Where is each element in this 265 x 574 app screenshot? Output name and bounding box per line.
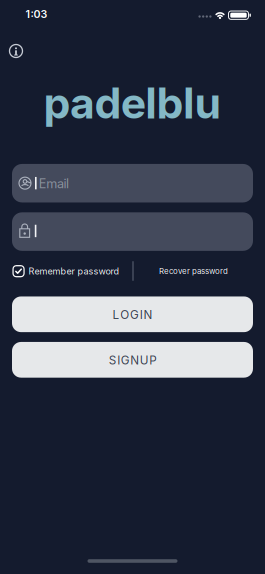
- staticText: O: [120, 308, 129, 322]
- button[interactable]: Recover password: [159, 266, 228, 276]
- staticText: G: [130, 308, 139, 322]
- button[interactable]: Remember password: [13, 266, 119, 277]
- staticText: L: [112, 308, 119, 322]
- staticText: N: [144, 308, 153, 322]
- button[interactable]: Password: [12, 212, 253, 251]
- staticText: I: [140, 308, 143, 322]
- staticText: S: [109, 353, 117, 367]
- staticText: 1:03: [25, 7, 47, 20]
- staticText: padelblu: [44, 77, 221, 129]
- staticText: Recover password: [159, 266, 228, 276]
- staticText: U: [140, 353, 149, 367]
- button[interactable]: Email: [12, 164, 253, 202]
- button[interactable]: L: [12, 296, 253, 332]
- staticText: I: [117, 353, 120, 367]
- button[interactable]: Info: [7, 42, 24, 59]
- staticText: Remember password: [28, 266, 119, 277]
- staticText: N: [130, 353, 139, 367]
- staticText: P: [149, 353, 156, 367]
- staticText: Email: [39, 176, 69, 191]
- button[interactable]: S: [12, 342, 253, 378]
- staticText: G: [121, 353, 130, 367]
